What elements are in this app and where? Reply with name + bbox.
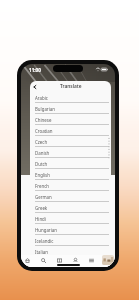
staticText: Icelandic — [35, 238, 54, 244]
button[interactable]: Chinese — [30, 114, 111, 125]
button[interactable]: Croatian — [30, 125, 111, 136]
button[interactable]: Dutch — [30, 158, 111, 169]
staticText: German — [35, 194, 52, 200]
button[interactable]: English — [30, 169, 111, 180]
button[interactable]: Tab 4 — [70, 255, 81, 265]
button[interactable]: Czech — [30, 136, 111, 147]
button[interactable]: Profile — [102, 255, 114, 265]
button[interactable]: Bulgarian — [30, 103, 111, 114]
staticText: French — [35, 183, 50, 189]
staticText: Dutch — [35, 161, 48, 167]
staticText: Danish — [35, 150, 50, 156]
staticText: Italian — [35, 249, 48, 255]
staticText: Chinese — [35, 117, 52, 123]
staticText: Hindi — [35, 216, 46, 222]
staticText: Arabic — [35, 95, 48, 101]
button[interactable]: Hungarian — [30, 224, 111, 235]
button[interactable]: Hindi — [30, 213, 111, 224]
button[interactable]: Danish — [30, 147, 111, 158]
button[interactable]: Greek — [30, 202, 111, 213]
staticText: Translate — [60, 83, 82, 90]
staticText: Croatian — [35, 128, 53, 134]
staticText: English — [35, 172, 50, 178]
button[interactable]: Tab 3 — [54, 255, 65, 265]
button[interactable]: Tab 1 — [22, 255, 33, 265]
staticText: Hungarian — [35, 227, 57, 233]
button[interactable]: Tab 2 — [38, 255, 49, 265]
button[interactable]: Back — [30, 82, 40, 92]
button[interactable]: French — [30, 180, 111, 191]
button[interactable]: Icelandic — [30, 235, 111, 246]
button[interactable]: Arabic — [30, 92, 111, 103]
staticText: Bulgarian — [35, 106, 55, 112]
button[interactable]: German — [30, 191, 111, 202]
staticText: 11:00 — [29, 67, 41, 73]
button[interactable]: Tab 5 — [86, 255, 97, 265]
staticText: Czech — [35, 139, 48, 145]
button[interactable]: Italian — [30, 246, 111, 257]
staticText: Greek — [35, 205, 48, 211]
